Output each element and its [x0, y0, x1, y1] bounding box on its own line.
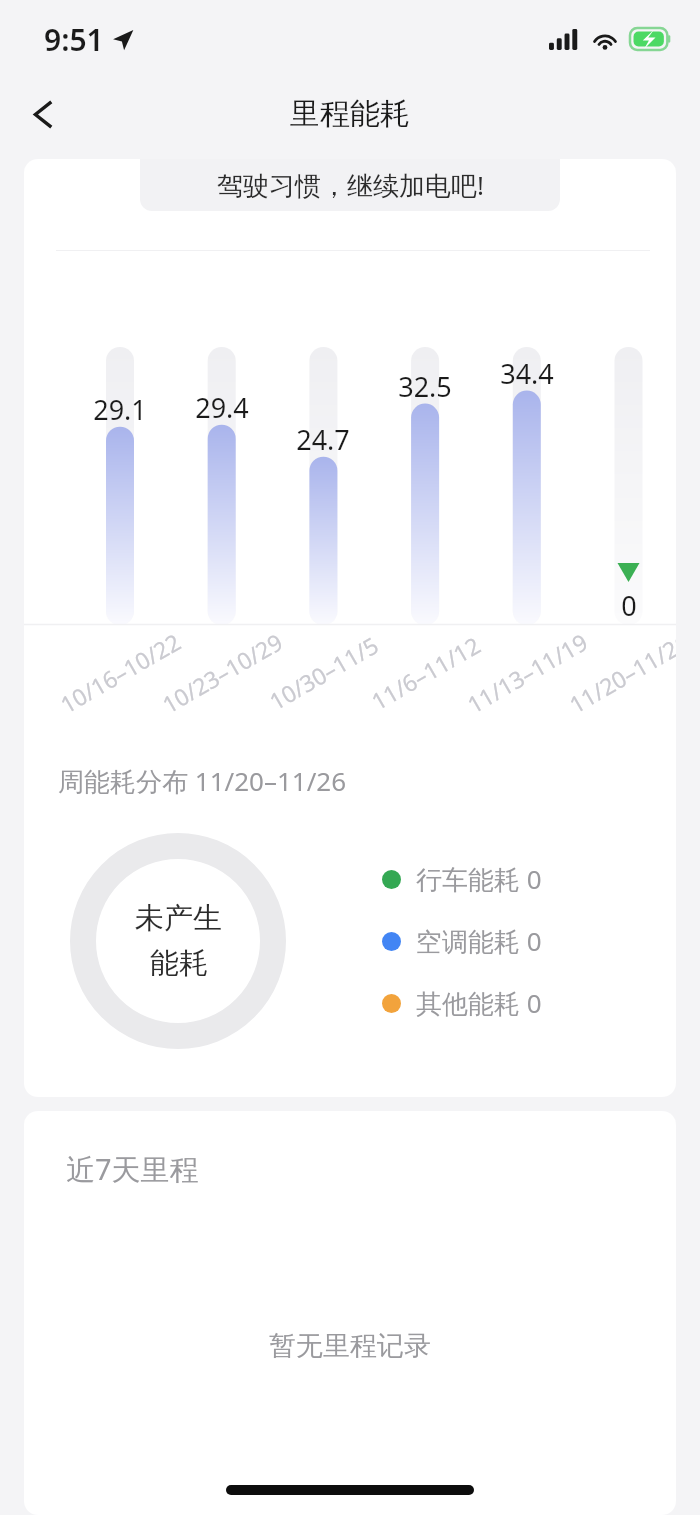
staticText: 11/6–11/12 [365, 629, 486, 716]
staticText: 周能耗分布 11/20–11/26 [58, 763, 347, 799]
staticText: 32.5 [380, 368, 470, 405]
staticText: 29.1 [75, 391, 165, 428]
staticText: 里程能耗 [290, 95, 410, 133]
staticText: 能耗 [150, 945, 208, 982]
staticText: 9:51 [44, 19, 104, 60]
staticText: 10/30–11/5 [263, 629, 384, 716]
staticText: 行车能耗 0 [416, 861, 542, 897]
button[interactable]: 其他能耗 0 [382, 985, 542, 1021]
staticText: 驾驶习惯，继续加电吧! [217, 167, 484, 203]
staticText: 10/23–10/29 [156, 626, 288, 719]
staticText: 24.7 [278, 421, 368, 458]
staticText: 34.4 [482, 355, 572, 392]
staticText: 0 [584, 587, 674, 624]
staticText: 近7天里程 [66, 1149, 199, 1189]
button[interactable]: Back [17, 88, 69, 140]
staticText: 10/16–10/22 [54, 626, 186, 719]
staticText: 未产生 [135, 900, 222, 937]
staticText: 29.4 [177, 389, 267, 426]
staticText: 11/13–11/19 [461, 626, 593, 719]
staticText: 11/20–11/26 [563, 626, 676, 719]
button[interactable]: 空调能耗 0 [382, 923, 542, 959]
button[interactable]: 行车能耗 0 [382, 861, 542, 897]
staticText: 暂无里程记录 [269, 1329, 431, 1363]
staticText: 其他能耗 0 [416, 985, 542, 1021]
staticText: 空调能耗 0 [416, 923, 542, 959]
